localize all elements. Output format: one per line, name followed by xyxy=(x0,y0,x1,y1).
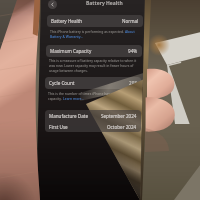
staticText: 203 xyxy=(129,80,137,86)
staticText: First Use xyxy=(49,124,68,130)
staticText: Manufacture Date xyxy=(49,113,89,119)
staticText: Learn more... xyxy=(63,96,85,101)
staticText: September 2024 xyxy=(101,113,137,119)
button[interactable]: Cycle Count xyxy=(45,77,141,89)
staticText: was new. Lower capacity may result in fe… xyxy=(49,63,134,68)
staticText: Normal xyxy=(122,18,139,24)
staticText: 94% xyxy=(128,48,138,54)
button[interactable]: Manufacture Date xyxy=(45,110,141,121)
button[interactable]: Battery Health xyxy=(47,15,143,27)
staticText: Battery Health xyxy=(86,0,123,7)
staticText: Battery Health xyxy=(51,18,83,24)
staticText: Maximum Capacity xyxy=(50,48,92,54)
staticText: usage between charges. xyxy=(49,68,88,73)
staticText: October 2024 xyxy=(107,124,137,130)
staticText: Cycle Count xyxy=(49,80,75,86)
staticText: Battery & Warranty... xyxy=(50,34,84,39)
staticText: This is a measure of battery capacity re… xyxy=(49,58,137,63)
staticText: About xyxy=(125,29,135,34)
staticText: This iPhone battery is performing as exp… xyxy=(50,29,125,34)
button[interactable]: Maximum Capacity xyxy=(46,45,142,57)
staticText: capacity. xyxy=(48,96,63,101)
staticText: This is the number of times iPhone has u… xyxy=(48,91,142,96)
button[interactable]: Back xyxy=(48,0,57,9)
button[interactable]: First Use xyxy=(45,121,141,132)
